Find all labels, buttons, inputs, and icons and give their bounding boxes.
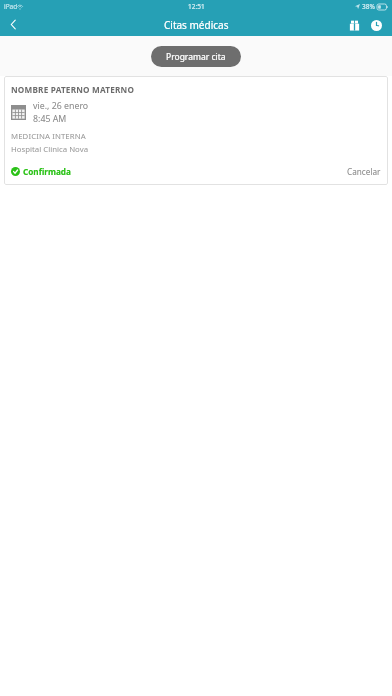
button[interactable]: Programar cita bbox=[151, 46, 241, 67]
button[interactable]: NOMBRE PATERNO MATERNO bbox=[4, 76, 388, 185]
button[interactable]: Store bbox=[344, 15, 364, 35]
staticText: Hospital Clinica Nova bbox=[11, 144, 89, 155]
button[interactable]: History bbox=[366, 15, 386, 35]
staticText: MEDICINA INTERNA bbox=[11, 131, 86, 142]
staticText: Cancelar bbox=[347, 166, 381, 177]
staticText: Confirmada bbox=[23, 166, 71, 177]
button[interactable]: Confirmada bbox=[11, 166, 71, 177]
staticText: 8:45 AM bbox=[33, 113, 67, 125]
button[interactable]: Cancelar bbox=[347, 166, 381, 177]
staticText: 38% bbox=[362, 2, 375, 11]
staticText: NOMBRE PATERNO MATERNO bbox=[11, 84, 135, 95]
staticText: vie., 26 enero bbox=[33, 100, 89, 112]
staticText: Citas médicas bbox=[164, 18, 229, 32]
staticText: 12:51 bbox=[188, 2, 205, 11]
button[interactable]: Back bbox=[0, 13, 26, 36]
staticText: Programar cita bbox=[166, 51, 226, 63]
staticText: iPad bbox=[4, 2, 18, 11]
